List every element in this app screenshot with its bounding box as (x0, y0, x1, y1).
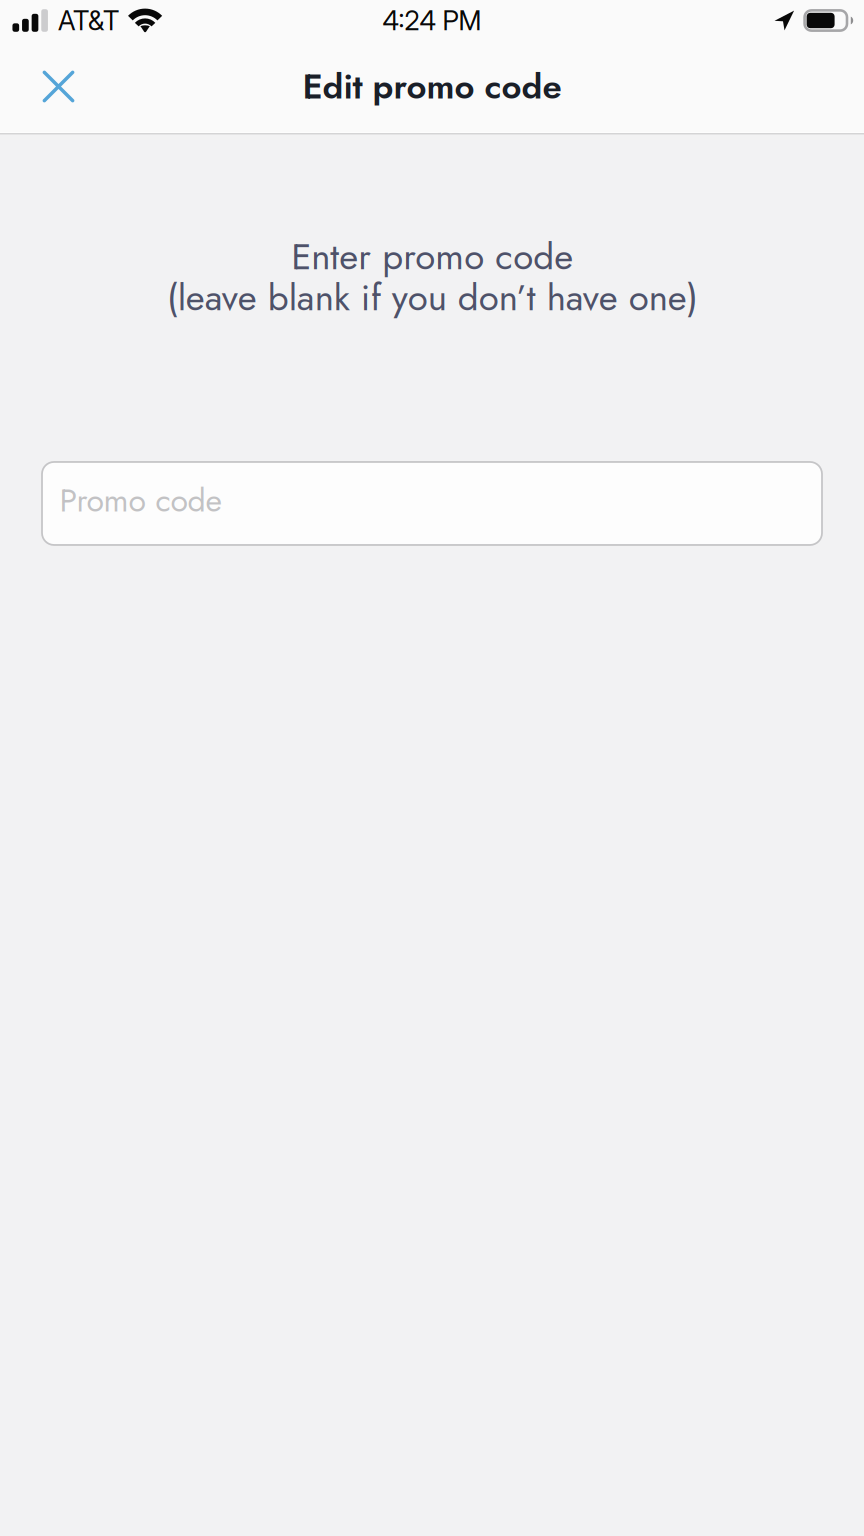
staticText: 4:24 PM (382, 4, 481, 37)
button[interactable]: Close (26, 54, 90, 118)
staticText: Edit promo code (302, 61, 561, 112)
staticText: AT&T (58, 4, 119, 37)
button[interactable]: Promo code (42, 462, 822, 545)
staticText: Promo code (59, 477, 221, 523)
staticText: Enter promo code (leave blank if you don… (166, 230, 697, 324)
